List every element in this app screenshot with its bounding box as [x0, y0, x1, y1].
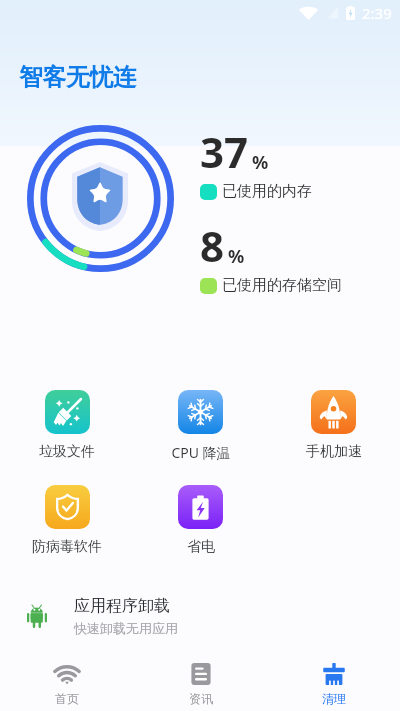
staticText: 快速卸载无用应用	[74, 620, 178, 636]
staticText: 2:39	[362, 3, 392, 23]
staticText: 已使用的存储空间	[222, 276, 342, 295]
staticText: 防病毒软件	[32, 538, 102, 556]
button[interactable]: CPU 降温	[134, 390, 267, 462]
staticText: %	[252, 150, 269, 175]
staticText: 资讯	[189, 691, 213, 706]
button[interactable]: 首页	[0, 663, 134, 706]
button[interactable]: 清理	[267, 663, 400, 706]
staticText: 已使用的内存	[222, 182, 312, 201]
staticText: 清理	[322, 691, 346, 706]
staticText: %	[228, 244, 245, 269]
button[interactable]: 省电	[134, 485, 267, 556]
button[interactable]: 手机加速	[267, 390, 400, 461]
staticText: 垃圾文件	[39, 443, 95, 461]
staticText: CPU 降温	[171, 443, 231, 462]
staticText: 首页	[55, 691, 79, 706]
button[interactable]: 防病毒软件	[0, 485, 134, 556]
staticText: 应用程序卸载	[74, 596, 170, 616]
button[interactable]: 垃圾文件	[0, 390, 134, 461]
button[interactable]: 应用程序卸载	[0, 588, 400, 644]
staticText: 手机加速	[306, 443, 362, 461]
staticText: 省电	[187, 538, 215, 556]
button[interactable]: 资讯	[134, 663, 267, 706]
staticText: 智客无忧连	[19, 62, 137, 92]
staticText: 8	[200, 217, 225, 274]
staticText: 37	[200, 123, 249, 180]
